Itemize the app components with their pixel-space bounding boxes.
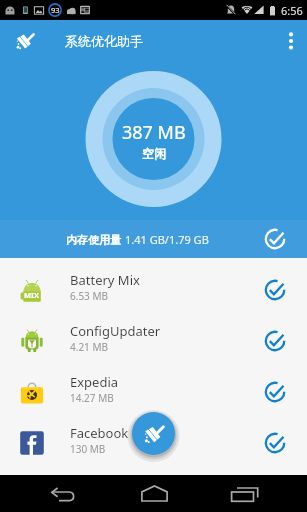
button[interactable]: Back (44, 476, 84, 512)
button[interactable]: Facebook (0, 417, 307, 468)
button[interactable]: Recents (224, 476, 264, 512)
button[interactable]: 内存使用量 (0, 220, 307, 258)
staticText: 系统优化助手 (65, 33, 143, 49)
staticText: 空闲 (142, 146, 166, 161)
staticText: 387 MB (122, 120, 186, 145)
staticText: Facebook (70, 424, 129, 442)
staticText: 6:56 (281, 3, 303, 18)
button[interactable]: Home (134, 476, 174, 512)
button[interactable]: Clean (132, 412, 175, 455)
staticText: 93 (51, 5, 60, 15)
staticText: 14.27 MB (70, 391, 114, 405)
staticText: 130 MB (70, 442, 106, 456)
button[interactable]: ConfigUpdater (0, 315, 307, 366)
staticText: Battery Mix (70, 271, 140, 289)
button[interactable]: More options (275, 20, 307, 62)
staticText: 1.41 GB/1.79 GB (125, 232, 209, 247)
button[interactable]: MIX (0, 264, 307, 315)
button[interactable]: Expedia (0, 366, 307, 417)
staticText: ConfigUpdater (70, 322, 161, 340)
staticText: 4.21 MB (70, 340, 109, 354)
staticText: Expedia (70, 373, 119, 391)
staticText: 内存使用量 (66, 233, 121, 247)
staticText: 6.53 MB (70, 289, 109, 303)
staticText: MIX (24, 290, 40, 300)
